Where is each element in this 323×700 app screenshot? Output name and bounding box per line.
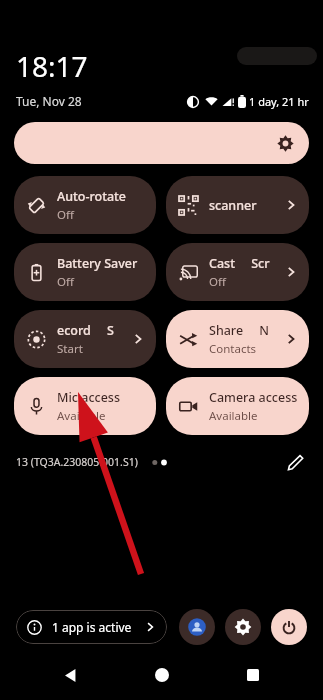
- staticText: scanner: [209, 197, 257, 214]
- button[interactable]: User account: [179, 609, 215, 645]
- button[interactable]: Recents: [232, 654, 274, 696]
- staticText: ecord S: [57, 322, 114, 339]
- staticText: Available: [209, 408, 258, 424]
- staticText: Share N: [209, 322, 270, 339]
- staticText: Available: [57, 408, 106, 424]
- staticText: Camera access: [209, 389, 298, 406]
- staticText: Contacts: [209, 341, 257, 357]
- button[interactable]: Settings: [225, 609, 261, 645]
- staticText: 1 day, 21 hr: [249, 94, 309, 109]
- staticText: 18:17: [16, 47, 88, 85]
- button[interactable]: Brightness: [14, 122, 309, 164]
- button[interactable]: QR code scanner: [166, 176, 309, 234]
- staticText: Off: [57, 274, 74, 290]
- button[interactable]: Edit tiles: [281, 448, 309, 476]
- button[interactable]: Auto-rotate: [14, 176, 156, 234]
- staticText: Mic access: [57, 389, 120, 406]
- staticText: Cast Scr: [209, 255, 270, 272]
- button[interactable]: Mic access: [14, 377, 156, 435]
- staticText: Start: [57, 341, 83, 357]
- button[interactable]: Power: [271, 609, 307, 645]
- button[interactable]: 1 app is active: [16, 610, 167, 644]
- button[interactable]: Screen record: [14, 310, 156, 368]
- staticText: 13 (TQ3A.230805.001.S1): [16, 455, 138, 469]
- button[interactable]: Battery Saver: [14, 243, 156, 301]
- button[interactable]: Back: [49, 654, 91, 696]
- button[interactable]: Cast: [166, 243, 309, 301]
- staticText: Off: [57, 207, 74, 223]
- staticText: Battery Saver: [57, 255, 138, 272]
- button[interactable]: Nearby Share: [166, 310, 309, 368]
- staticText: Auto-rotate: [57, 188, 127, 205]
- button[interactable]: Home: [141, 654, 183, 696]
- staticText: 1 app is active: [52, 619, 132, 635]
- staticText: Off: [209, 274, 226, 290]
- staticText: Tue, Nov 28: [16, 93, 82, 109]
- button[interactable]: Camera access: [166, 377, 309, 435]
